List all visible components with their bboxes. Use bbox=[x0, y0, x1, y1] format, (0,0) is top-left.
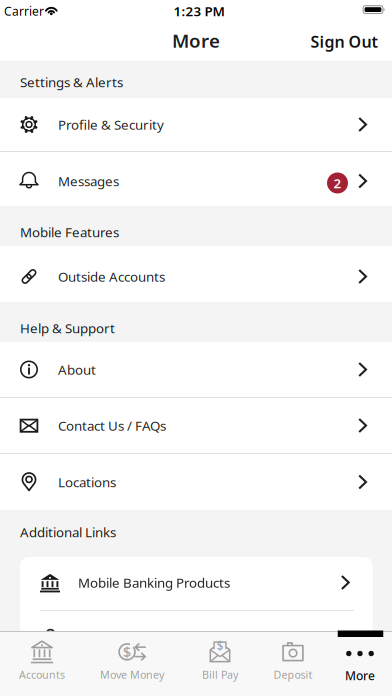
staticText: More bbox=[345, 667, 375, 683]
staticText: Outside Accounts bbox=[58, 268, 165, 285]
button[interactable]: $ bbox=[180, 633, 260, 689]
staticText: Bill Pay bbox=[202, 667, 238, 682]
staticText: Profile & Security bbox=[58, 116, 164, 133]
button[interactable]: About bbox=[0, 342, 392, 397]
button[interactable]: Contact Us / FAQs bbox=[0, 398, 392, 453]
button[interactable]: Locations bbox=[0, 454, 392, 510]
staticText: Contact Us / FAQs bbox=[58, 417, 166, 434]
staticText: Mobile Features bbox=[20, 223, 119, 241]
staticText: Carrier bbox=[4, 3, 44, 19]
button[interactable]: Profile & Security bbox=[0, 98, 392, 151]
staticText: Deposit bbox=[273, 667, 312, 682]
staticText: Sign Out bbox=[310, 31, 377, 52]
staticText: Locations bbox=[58, 473, 116, 491]
staticText: Messages bbox=[58, 172, 119, 190]
button[interactable]: Sign Out bbox=[310, 31, 377, 52]
staticText: Accounts bbox=[19, 667, 65, 682]
staticText: Mobile Banking Products bbox=[78, 574, 230, 591]
staticText: Help & Support bbox=[20, 319, 115, 337]
staticText: 2 bbox=[333, 174, 341, 192]
button[interactable]: Messages bbox=[0, 152, 392, 206]
staticText: Additional Links bbox=[20, 523, 116, 541]
staticText: More bbox=[172, 28, 220, 53]
button[interactable]: Mobile Banking Products bbox=[20, 557, 373, 637]
button[interactable]: Deposit bbox=[253, 633, 333, 689]
staticText: Move Money bbox=[100, 667, 164, 682]
staticText: Settings & Alerts bbox=[20, 73, 123, 91]
staticText: About bbox=[58, 361, 96, 378]
button[interactable]: Accounts bbox=[2, 633, 82, 689]
button[interactable]: Outside Accounts bbox=[0, 246, 392, 302]
staticText: $ bbox=[123, 643, 131, 661]
staticText: $ bbox=[217, 639, 223, 654]
staticText: 1:23 PM bbox=[173, 2, 224, 20]
button[interactable]: $ bbox=[92, 633, 172, 689]
button[interactable]: More bbox=[320, 634, 392, 690]
